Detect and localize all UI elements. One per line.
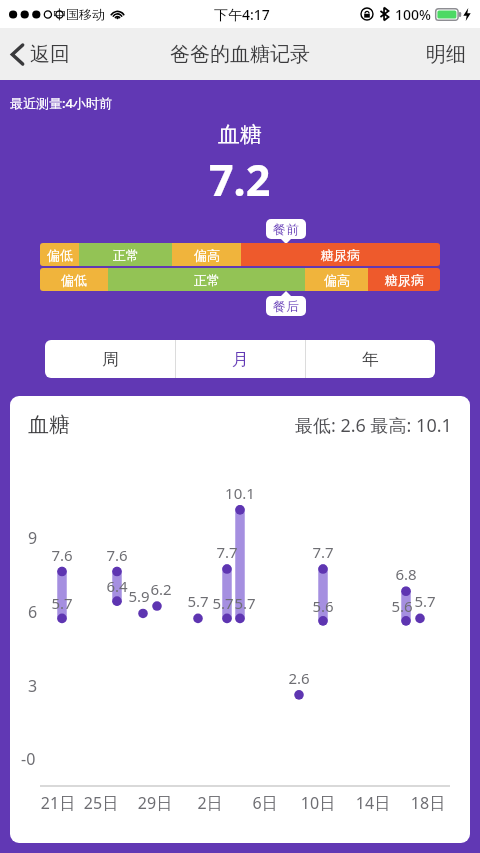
button[interactable]: 返回 <box>0 33 80 76</box>
staticText: 周 <box>102 349 119 370</box>
staticText: 餐后 <box>273 298 299 314</box>
staticText: 5.6 <box>385 596 419 616</box>
staticText: 偏高 <box>324 272 350 288</box>
staticText: 糖尿病 <box>321 247 360 263</box>
staticText: 中国移动 <box>53 6 105 22</box>
staticText: 年 <box>362 349 379 370</box>
staticText: 29日 <box>133 792 177 814</box>
staticText: 最低: 2.6 最高: 10.1 <box>295 413 452 438</box>
staticText: 偏高 <box>194 247 220 263</box>
staticText: 糖尿病 <box>385 272 424 288</box>
button[interactable]: 月 <box>176 340 305 378</box>
staticText: 25日 <box>79 792 123 814</box>
staticText: 返回 <box>30 42 70 67</box>
staticText: 21日 <box>36 792 80 814</box>
staticText: 正常 <box>113 247 139 263</box>
staticText: 9 <box>28 527 38 549</box>
staticText: 5.7 <box>228 593 262 613</box>
staticText: 偏低 <box>47 247 73 263</box>
button[interactable]: 明细 <box>412 33 480 76</box>
button[interactable]: 周 <box>45 340 175 378</box>
staticText: 血糖 <box>218 121 262 149</box>
staticText: 10.1 <box>223 483 257 503</box>
staticText: 5.6 <box>306 596 340 616</box>
staticText: 2日 <box>188 792 232 814</box>
staticText: 6 <box>28 601 38 623</box>
staticText: 最近测量:4小时前 <box>10 94 112 112</box>
staticText: 偏低 <box>61 272 87 288</box>
staticText: 血糖 <box>28 412 70 438</box>
staticText: 6.2 <box>144 579 178 599</box>
staticText: 100% <box>395 5 431 24</box>
staticText: 3 <box>28 675 38 697</box>
staticText: 下午4:17 <box>214 5 270 24</box>
staticText: 5.7 <box>206 593 240 613</box>
staticText: 6.4 <box>100 576 134 596</box>
staticText: 18日 <box>406 792 450 814</box>
staticText: -0 <box>21 748 36 770</box>
staticText: 明细 <box>426 42 466 67</box>
staticText: 7.7 <box>306 542 340 562</box>
staticText: 6.8 <box>389 564 423 584</box>
staticText: 月 <box>232 349 249 370</box>
staticText: 10日 <box>296 792 340 814</box>
staticText: 7.2 <box>209 150 271 209</box>
staticText: 爸爸的血糖记录 <box>170 42 310 67</box>
staticText: 5.7 <box>45 593 79 613</box>
button[interactable]: 年 <box>306 340 435 378</box>
staticText: 餐前 <box>273 221 299 237</box>
staticText: 2.6 <box>282 668 316 688</box>
staticText: 5.7 <box>408 591 442 611</box>
staticText: 正常 <box>194 272 220 288</box>
staticText: 14日 <box>351 792 395 814</box>
staticText: 6日 <box>243 792 287 814</box>
staticText: 5.9 <box>122 586 156 606</box>
staticText: 7.6 <box>100 545 134 565</box>
staticText: 7.6 <box>45 545 79 565</box>
staticText: 5.7 <box>181 591 215 611</box>
staticText: 7.7 <box>210 542 244 562</box>
